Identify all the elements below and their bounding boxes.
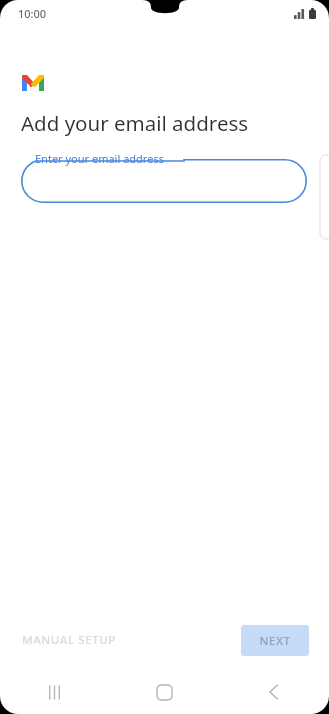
button[interactable]: MANUAL SETUP (10, 625, 128, 655)
button[interactable]: Recents (0, 670, 109, 714)
staticText: NEXT (259, 633, 291, 649)
staticText: 10:00 (18, 6, 47, 21)
staticText: Add your email address (21, 109, 249, 137)
button[interactable]: NEXT (241, 625, 309, 656)
staticText: MANUAL SETUP (22, 632, 116, 648)
button[interactable]: Enter your email address (21, 151, 307, 203)
button[interactable]: Home (109, 670, 219, 714)
button[interactable]: Back (219, 670, 329, 714)
staticText: Enter your email address (35, 151, 164, 166)
